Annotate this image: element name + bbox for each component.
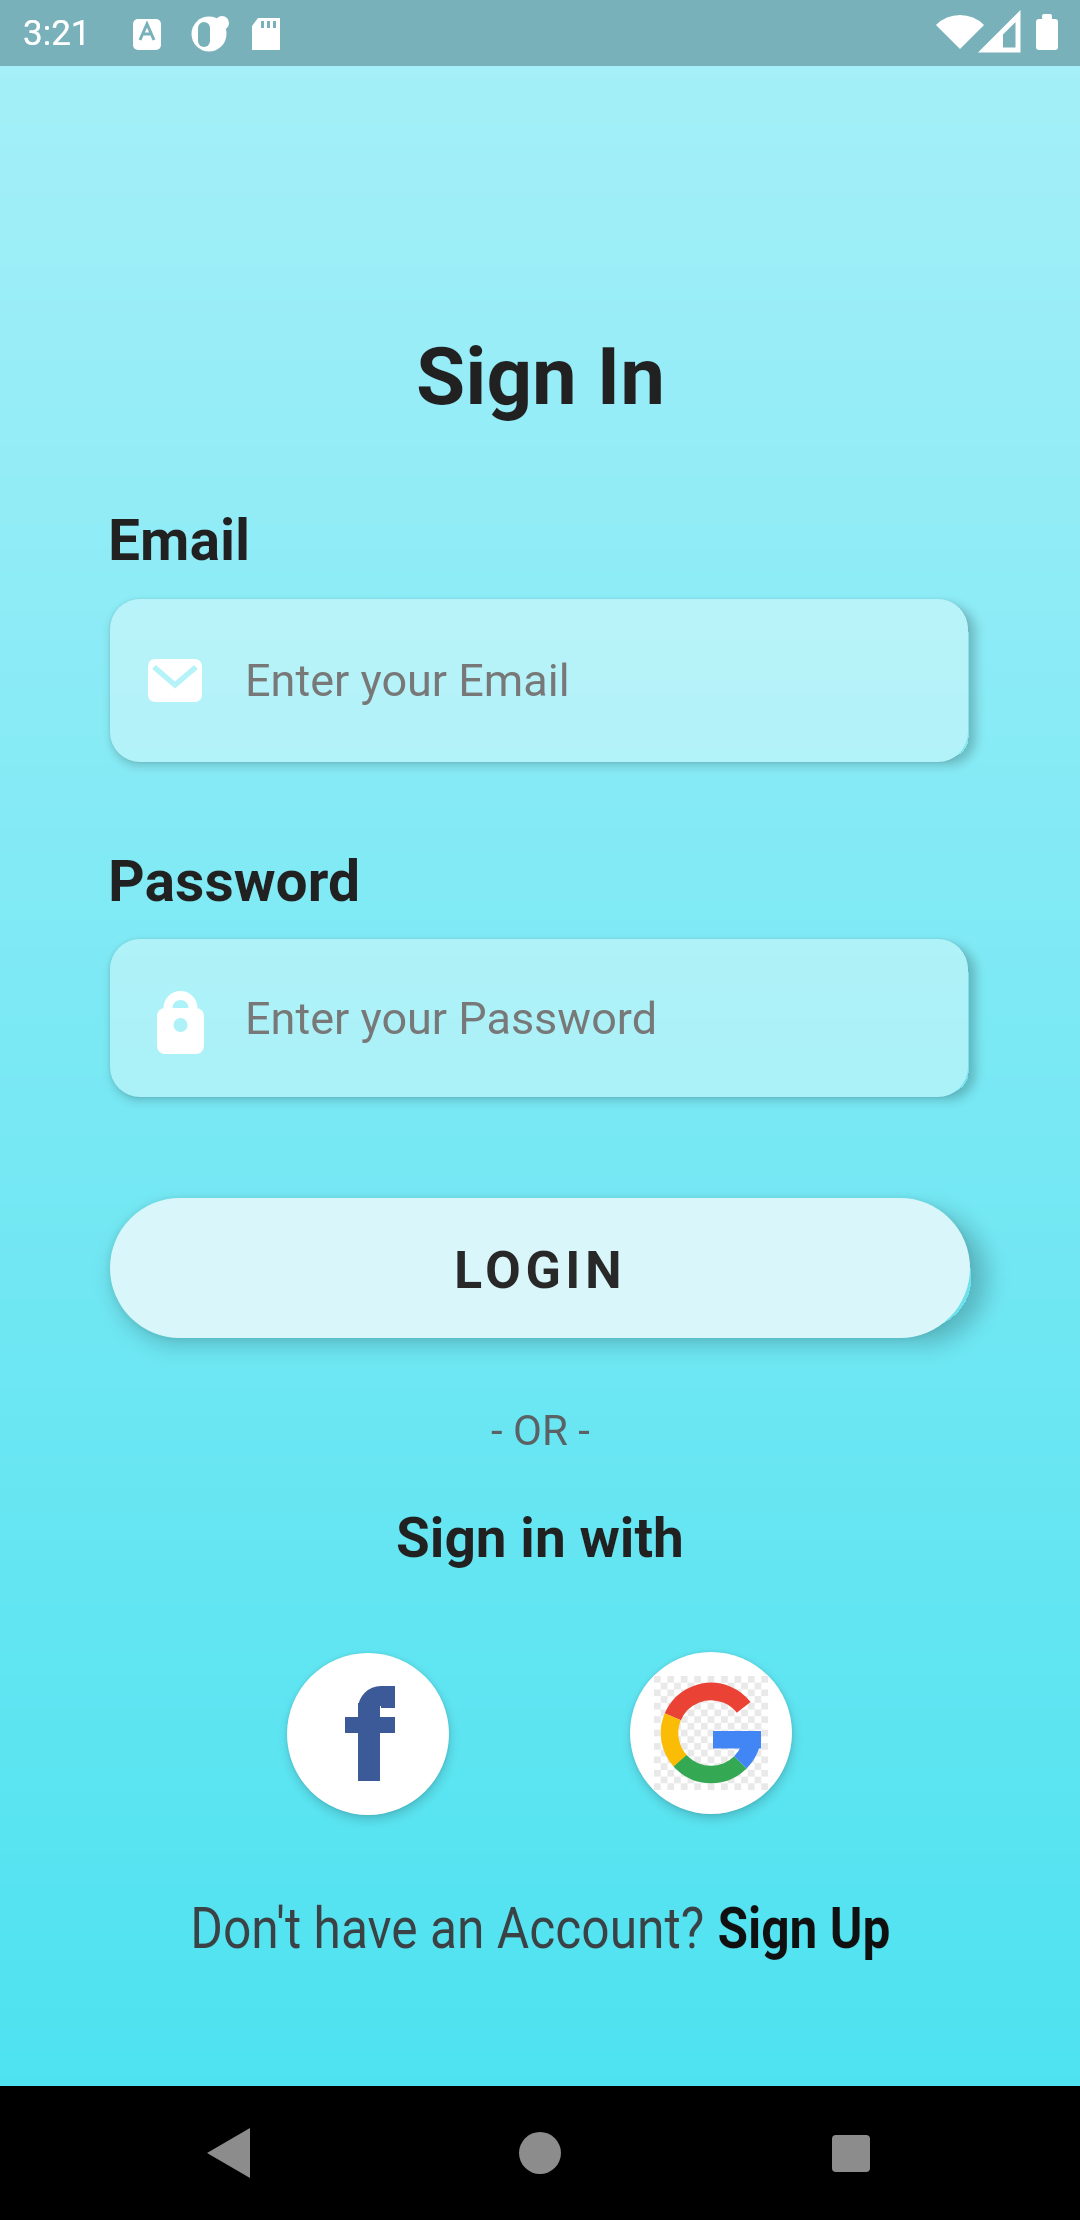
button[interactable]: Enter your Email xyxy=(110,599,968,762)
button[interactable] xyxy=(287,1653,449,1815)
staticText: Enter your Email xyxy=(245,654,570,707)
button[interactable]: LOGIN xyxy=(110,1198,970,1338)
staticText: Don't have an Account? xyxy=(190,1894,717,1962)
staticText: LOGIN xyxy=(454,1240,627,1301)
staticText: Sign in with xyxy=(396,1506,684,1570)
button[interactable] xyxy=(801,2103,901,2203)
button[interactable] xyxy=(490,2103,590,2203)
button[interactable] xyxy=(178,2103,278,2203)
staticText: Email xyxy=(108,507,251,574)
staticText: Password xyxy=(108,848,361,915)
button[interactable] xyxy=(630,1652,792,1814)
staticText: - OR - xyxy=(491,1406,590,1455)
staticText: Enter your Password xyxy=(245,992,658,1045)
staticText: 3:21 xyxy=(23,13,91,54)
button[interactable]: Enter your Password xyxy=(110,939,968,1097)
button[interactable]: Sign Up xyxy=(717,1894,890,1962)
staticText: Sign In xyxy=(416,330,665,424)
